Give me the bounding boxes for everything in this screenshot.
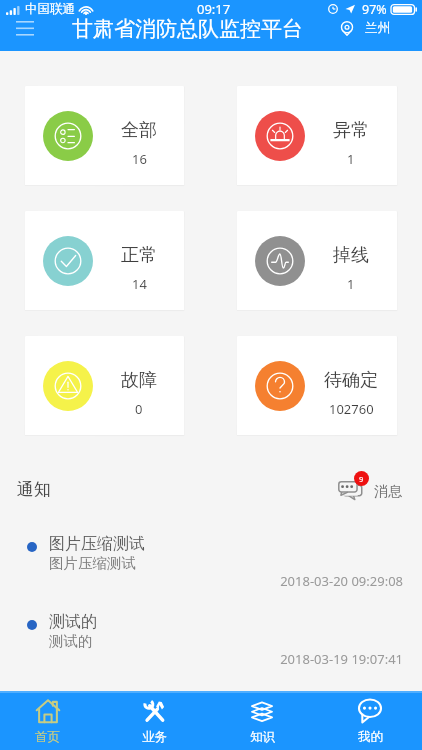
staticText: 图片压缩测试 xyxy=(49,534,145,554)
staticText: 甘肃省消防总队监控平台 xyxy=(72,16,303,42)
button[interactable]: 图片压缩测试 xyxy=(0,534,422,590)
button[interactable]: Location xyxy=(341,20,390,36)
button[interactable]: 业务 xyxy=(105,693,210,750)
staticText: 图片压缩测试 xyxy=(49,554,136,572)
staticText: 1 xyxy=(347,275,355,293)
staticText: 正常 xyxy=(121,244,157,267)
staticText: 测试的 xyxy=(49,612,97,632)
staticText: 异常 xyxy=(333,119,369,142)
button[interactable]: 知识 xyxy=(210,693,316,750)
button[interactable]: 异常 xyxy=(237,86,397,185)
button[interactable]: 我的 xyxy=(316,693,422,750)
staticText: 我的 xyxy=(358,729,383,745)
button[interactable]: 正常 xyxy=(25,211,184,310)
staticText: 中国联通 xyxy=(25,1,75,17)
staticText: 1 xyxy=(347,150,355,168)
staticText: 通知 xyxy=(17,479,51,500)
staticText: 2018-03-20 09:29:08 xyxy=(27,572,403,590)
button[interactable]: 全部 xyxy=(25,86,184,185)
staticText: 测试的 xyxy=(49,632,93,650)
staticText: 14 xyxy=(132,275,147,293)
staticText: 兰州 xyxy=(365,20,390,36)
staticText: 全部 xyxy=(121,119,157,142)
staticText: 97% xyxy=(362,1,387,18)
button[interactable]: 9 xyxy=(337,470,412,502)
staticText: 消息 xyxy=(374,483,402,501)
staticText: 2018-03-19 19:07:41 xyxy=(27,650,403,668)
button[interactable]: 故障 xyxy=(25,336,184,435)
button[interactable]: 待确定 xyxy=(237,336,397,435)
button[interactable]: Menu xyxy=(7,11,43,44)
staticText: 业务 xyxy=(142,729,167,745)
staticText: 待确定 xyxy=(324,369,378,392)
staticText: 102760 xyxy=(329,400,374,418)
staticText: 故障 xyxy=(121,369,157,392)
staticText: 掉线 xyxy=(333,244,369,267)
staticText: 9 xyxy=(359,474,364,484)
staticText: 知识 xyxy=(250,729,275,745)
button[interactable]: 测试的 xyxy=(0,612,422,668)
staticText: 16 xyxy=(132,150,147,168)
button[interactable]: 掉线 xyxy=(237,211,397,310)
staticText: 09:17 xyxy=(197,0,231,18)
button[interactable]: 首页 xyxy=(0,693,105,750)
staticText: 0 xyxy=(135,400,143,418)
staticText: 首页 xyxy=(35,729,60,745)
